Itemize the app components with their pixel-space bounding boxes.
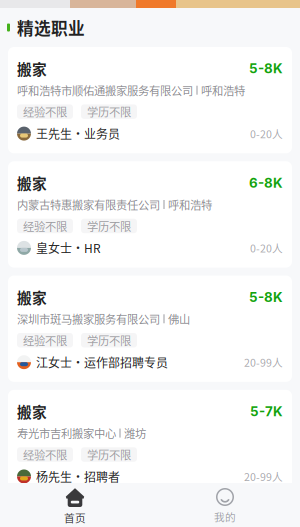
staticText: 经验不限: [23, 446, 67, 463]
staticText: 首页: [64, 510, 86, 525]
staticText: 6-8K: [249, 175, 283, 191]
staticText: 呼和浩特: [168, 196, 212, 213]
staticText: 20-99人: [244, 354, 283, 370]
staticText: 学历不限: [87, 103, 131, 120]
staticText: 内蒙古特惠搬家有限责任公司: [17, 196, 160, 213]
button[interactable]: 搬家: [8, 161, 292, 268]
staticText: 0-20人: [250, 240, 283, 256]
staticText: 学历不限: [87, 218, 131, 234]
button[interactable]: 首页: [0, 483, 150, 527]
staticText: 呼和浩特: [201, 82, 245, 98]
staticText: 精选职业: [17, 15, 85, 39]
staticText: 学历不限: [87, 446, 131, 463]
staticText: 寿光市吉利搬家中心: [17, 425, 116, 441]
staticText: 深圳市斑马搬家服务有限公司: [17, 311, 160, 327]
staticText: 经验不限: [23, 103, 67, 120]
button[interactable]: 搬家: [8, 47, 292, 153]
staticText: 搬家: [17, 58, 47, 79]
staticText: 学历不限: [87, 332, 131, 348]
button[interactable]: 我的: [150, 483, 300, 527]
staticText: 皇女士·HR: [36, 239, 101, 257]
staticText: 潍坊: [124, 425, 146, 441]
staticText: 搬家: [17, 401, 47, 422]
staticText: 我的: [214, 509, 236, 524]
staticText: 经验不限: [23, 332, 67, 348]
button[interactable]: 搬家: [8, 276, 292, 382]
staticText: 杨先生·招聘者: [36, 468, 120, 485]
staticText: 呼和浩特市顺佑通搬家服务有限公司: [17, 82, 193, 98]
staticText: 搬家: [17, 286, 47, 308]
staticText: 经验不限: [23, 218, 67, 234]
staticText: 王先生·业务员: [36, 125, 120, 142]
staticText: 江女士·运作部招聘专员: [36, 353, 168, 371]
staticText: 搬家: [17, 172, 47, 193]
button[interactable]: 搬家: [8, 390, 292, 496]
staticText: 0-20人: [250, 126, 283, 141]
staticText: 5-8K: [249, 289, 283, 305]
staticText: 20-99人: [244, 469, 283, 484]
staticText: 5-8K: [249, 60, 283, 76]
staticText: 佛山: [168, 311, 190, 327]
staticText: 5-7K: [250, 403, 283, 419]
